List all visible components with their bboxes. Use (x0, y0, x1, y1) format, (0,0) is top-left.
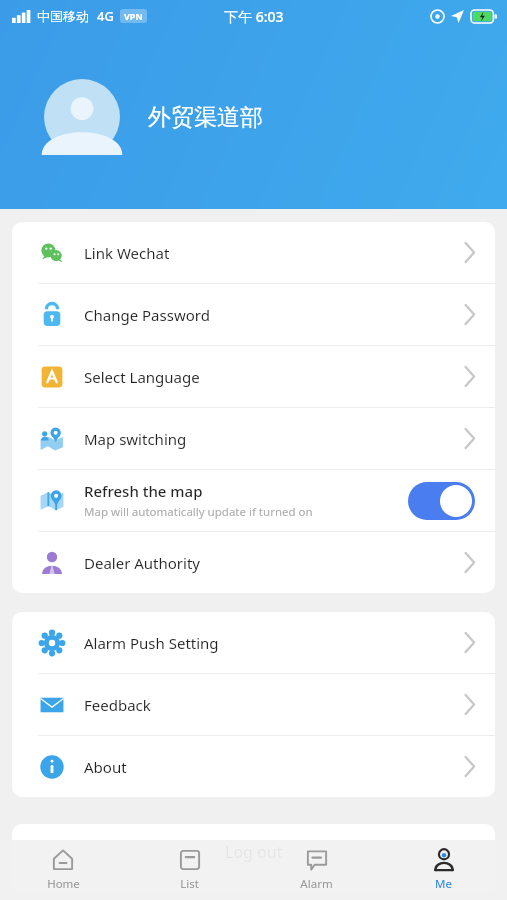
button[interactable]: Home (0, 840, 126, 900)
button[interactable]: About (12, 736, 495, 797)
staticText: Change Password (84, 305, 210, 325)
button[interactable]: Select Language (12, 346, 495, 407)
staticText: Select Language (84, 367, 200, 387)
staticText: Feedback (84, 695, 151, 715)
button[interactable]: Refresh the map toggle, on (408, 482, 475, 520)
button[interactable]: Log out (12, 824, 495, 894)
staticText: 下午 6:03 (224, 7, 284, 26)
staticText: Map will automatically update if turned … (84, 504, 313, 520)
button[interactable]: Alarm Push Setting (12, 612, 495, 673)
staticText: List (180, 876, 199, 892)
button[interactable]: Alarm (253, 840, 380, 900)
staticText: Home (47, 876, 80, 892)
button[interactable]: Dealer Authority (12, 532, 495, 593)
button[interactable]: Me (380, 840, 507, 900)
staticText: Refresh the map (84, 481, 203, 501)
staticText: Log out (225, 841, 283, 863)
staticText: 中国移动 (37, 8, 89, 24)
button[interactable]: List (126, 840, 253, 900)
staticText: Alarm (300, 876, 333, 892)
staticText: Link Wechat (84, 243, 170, 263)
staticText: 外贸渠道部 (148, 103, 263, 132)
staticText: Dealer Authority (84, 553, 200, 573)
staticText: VPN (124, 10, 143, 22)
button[interactable]: Change Password (12, 284, 495, 345)
button[interactable]: Link Wechat (12, 222, 495, 283)
staticText: Map switching (84, 429, 187, 449)
staticText: Alarm Push Setting (84, 633, 219, 653)
staticText: Me (435, 876, 452, 892)
button[interactable]: Feedback (12, 674, 495, 735)
staticText: 4G (97, 7, 114, 25)
button[interactable]: Refresh the map (12, 470, 495, 531)
button[interactable]: Map switching (12, 408, 495, 469)
staticText: About (84, 757, 127, 777)
